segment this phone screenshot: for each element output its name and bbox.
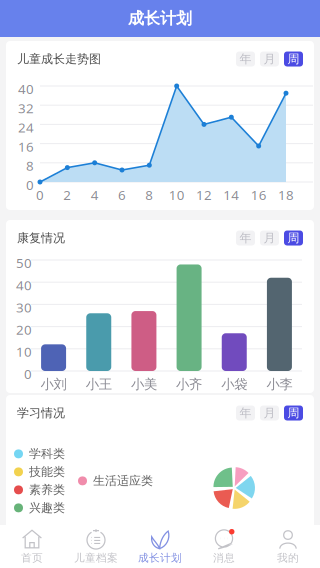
staticText: 首页 [21,551,43,564]
staticText: 月 [263,406,275,420]
button[interactable]: 儿童档案 [64,525,128,568]
button[interactable]: 年 [236,51,255,66]
staticText: 8 [26,157,34,174]
button[interactable]: 月 [260,51,279,66]
staticText: 18 [278,186,294,204]
staticText: 0 [36,186,44,204]
staticText: 小王 [86,376,112,392]
staticText: 月 [263,52,275,66]
staticText: 16 [18,138,34,155]
button[interactable]: 月 [260,230,279,245]
staticText: 儿童成长走势图 [17,52,101,66]
staticText: 2 [63,186,71,204]
staticText: 周 [287,231,299,245]
button[interactable]: 年 [236,230,255,245]
button[interactable]: 周 [284,405,303,420]
staticText: 小美 [131,376,157,392]
staticText: 成长计划 [128,9,192,28]
staticText: 儿童档案 [74,551,118,564]
button[interactable]: 月 [260,405,279,420]
staticText: 12 [196,186,212,204]
button[interactable]: 成长计划 [128,525,192,568]
staticText: 小袋 [221,376,247,392]
staticText: 康复情况 [17,231,65,245]
staticText: 月 [263,231,275,245]
staticText: 周 [287,52,299,66]
staticText: 40 [16,276,32,294]
button[interactable]: 首页 [0,525,64,568]
staticText: 小刘 [41,376,67,392]
button[interactable]: 年 [236,405,255,420]
button[interactable]: 消息 [192,525,256,568]
staticText: 6 [118,186,126,204]
staticText: 16 [251,186,267,204]
staticText: 50 [16,254,32,272]
staticText: 生活适应类 [93,473,153,488]
button[interactable]: 周 [284,230,303,245]
staticText: 14 [223,186,239,204]
staticText: 32 [18,99,34,117]
staticText: 0 [26,176,34,194]
staticText: 8 [145,186,153,204]
staticText: 消息 [213,551,235,564]
staticText: 年 [239,52,251,66]
staticText: 技能类 [29,464,65,479]
staticText: 学习情况 [17,406,65,420]
staticText: 0 [24,365,32,383]
staticText: 周 [287,406,299,420]
staticText: 年 [239,406,251,420]
staticText: 小齐 [176,376,202,392]
staticText: 10 [169,186,185,204]
staticText: 成长计划 [138,551,182,564]
staticText: 学科类 [29,446,65,461]
staticText: 兴趣类 [29,500,65,515]
staticText: 4 [91,186,99,204]
button[interactable]: 周 [284,51,303,66]
staticText: 30 [16,298,32,316]
staticText: 10 [16,343,32,360]
button[interactable]: 我的 [256,525,320,568]
staticText: 40 [18,80,34,98]
staticText: 24 [18,118,34,136]
staticText: 20 [16,321,32,338]
staticText: 素养类 [29,482,65,497]
staticText: 小李 [266,376,292,392]
staticText: 我的 [277,551,299,564]
staticText: 年 [239,231,251,245]
